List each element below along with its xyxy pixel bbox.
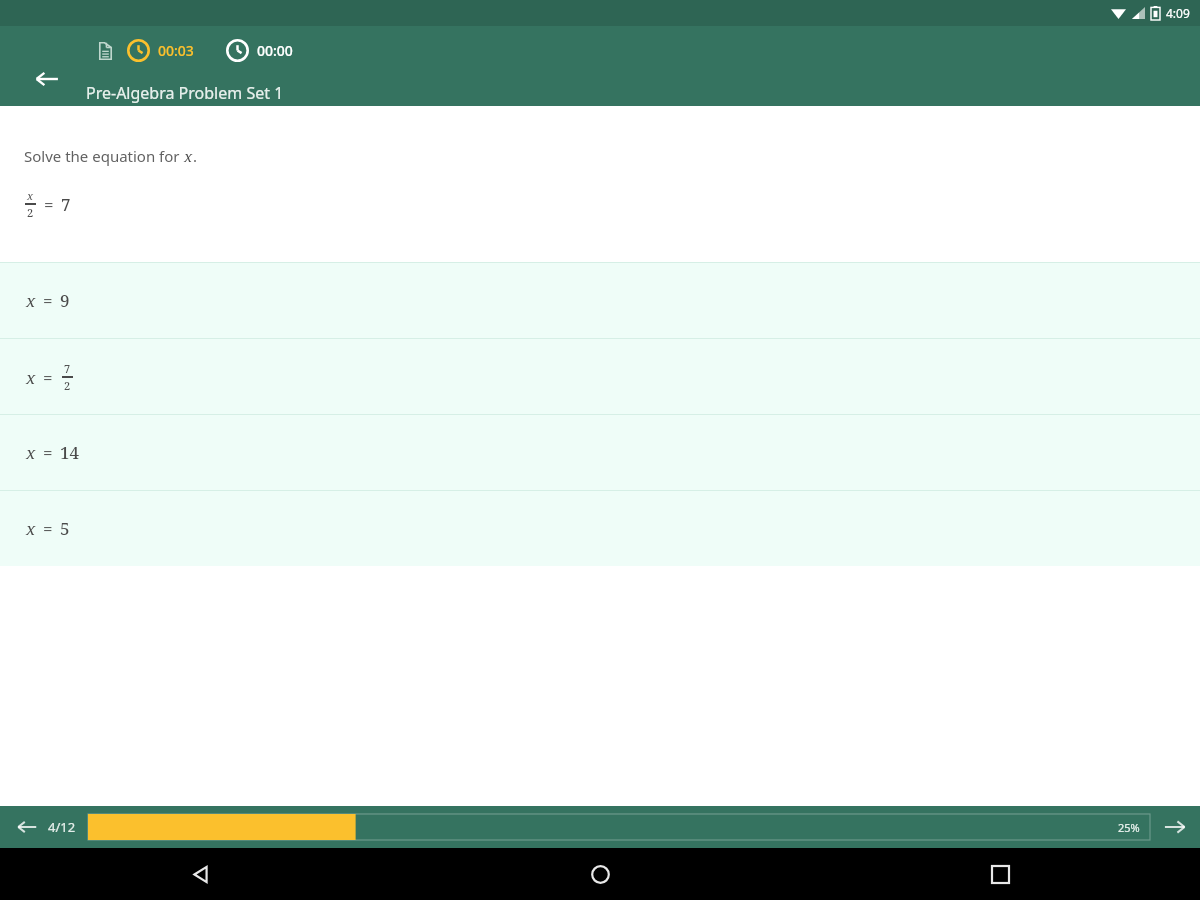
staticText: x bbox=[27, 188, 34, 203]
staticText: x bbox=[26, 517, 36, 540]
staticText: 14 bbox=[60, 441, 80, 464]
staticText: 9 bbox=[60, 289, 70, 312]
staticText: 5 bbox=[60, 517, 70, 540]
staticText: 00:03 bbox=[158, 41, 194, 60]
staticText: 00:00 bbox=[257, 41, 293, 60]
button[interactable]: 00:00 bbox=[224, 37, 295, 64]
button[interactable]: Home bbox=[400, 848, 800, 900]
button[interactable]: x bbox=[0, 415, 1200, 490]
staticText: 7 bbox=[61, 193, 71, 216]
button[interactable]: Previous question bbox=[10, 810, 44, 844]
staticText: x bbox=[26, 366, 36, 389]
staticText: = bbox=[44, 193, 54, 216]
staticText: x bbox=[26, 441, 36, 464]
button[interactable]: x bbox=[0, 491, 1200, 566]
staticText: 4:09 bbox=[1166, 5, 1190, 21]
staticText: 2 bbox=[27, 205, 34, 220]
button[interactable]: Next question bbox=[1156, 808, 1194, 846]
button[interactable]: x bbox=[0, 339, 1200, 414]
staticText: 7 bbox=[64, 361, 71, 376]
button[interactable]: Question info bbox=[92, 38, 118, 64]
button[interactable]: Recent apps bbox=[800, 848, 1200, 900]
button[interactable]: Back bbox=[0, 848, 400, 900]
staticText: x bbox=[184, 146, 193, 166]
button[interactable]: x bbox=[0, 263, 1200, 338]
staticText: 25% bbox=[1118, 820, 1140, 835]
staticText: = bbox=[43, 366, 53, 389]
staticText: Solve the equation for bbox=[24, 146, 184, 166]
button[interactable]: 00:03 bbox=[125, 37, 196, 64]
staticText: x bbox=[26, 289, 36, 312]
staticText: . bbox=[193, 146, 198, 166]
staticText: 4/12 bbox=[48, 818, 76, 836]
staticText: Pre-Algebra Problem Set 1 bbox=[86, 82, 284, 104]
staticText: = bbox=[43, 441, 53, 464]
staticText: 2 bbox=[64, 378, 71, 393]
staticText: = bbox=[43, 289, 53, 312]
button[interactable]: Back bbox=[26, 58, 68, 100]
staticText: = bbox=[43, 517, 53, 540]
